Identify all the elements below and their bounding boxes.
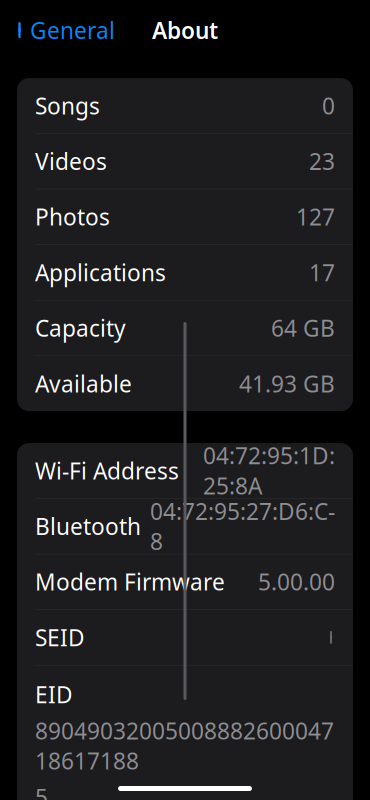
button[interactable]: Photos	[17, 189, 353, 245]
button[interactable]: SEID	[17, 610, 353, 665]
button[interactable]: General	[4, 9, 125, 51]
button[interactable]: Available	[17, 356, 353, 411]
staticText: Available	[35, 368, 132, 399]
staticText: 64 GB	[271, 313, 335, 343]
staticText: 41.93 GB	[239, 368, 335, 399]
staticText: Wi-Fi Address	[35, 455, 179, 486]
staticText: 17	[309, 257, 335, 287]
staticText: 5	[35, 782, 48, 800]
staticText: 127	[296, 202, 335, 232]
staticText: Songs	[35, 90, 100, 121]
staticText: 8904903200500888260004718617188	[35, 716, 334, 776]
staticText: EID	[35, 679, 73, 710]
staticText: 23	[309, 146, 335, 176]
staticText: About	[152, 15, 218, 45]
staticText: Capacity	[35, 313, 126, 343]
button[interactable]: Capacity	[17, 300, 353, 356]
staticText: 5.00.00	[258, 567, 335, 597]
button[interactable]: Bluetooth	[17, 499, 353, 554]
staticText: Bluetooth	[35, 511, 141, 541]
staticText: SEID	[35, 622, 85, 652]
button[interactable]: Modem Firmware	[17, 554, 353, 610]
staticText: Photos	[35, 202, 110, 232]
staticText: Applications	[35, 257, 166, 287]
staticText: Modem Firmware	[35, 567, 225, 597]
button[interactable]: Applications	[17, 245, 353, 300]
button[interactable]: Videos	[17, 134, 353, 189]
button[interactable]: EID	[17, 665, 353, 800]
staticText: 0	[322, 90, 335, 121]
staticText: 04:72:95:1D:25:8A	[203, 440, 335, 501]
button[interactable]: Songs	[17, 78, 353, 134]
staticText: 04:72:95:27:D6:C8	[150, 496, 335, 556]
staticText: General	[30, 15, 115, 45]
staticText: Videos	[35, 146, 107, 176]
button[interactable]: Wi-Fi Address	[17, 443, 353, 499]
